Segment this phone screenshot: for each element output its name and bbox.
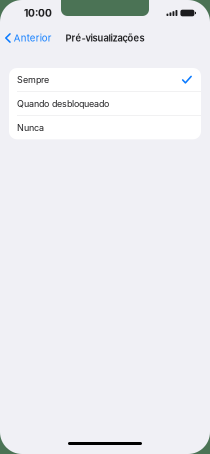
staticText: 10:00 xyxy=(24,7,52,19)
button[interactable]: Anterior xyxy=(0,26,59,50)
staticText: Pré-visualizações xyxy=(65,32,144,44)
button[interactable]: Quando desbloqueado xyxy=(9,92,201,115)
staticText: Nunca xyxy=(17,122,44,133)
button[interactable]: Sempre xyxy=(9,68,201,91)
staticText: Sempre xyxy=(17,74,49,85)
staticText: Anterior xyxy=(14,32,52,44)
button[interactable]: Nunca xyxy=(9,116,201,139)
staticText: Quando desbloqueado xyxy=(17,98,109,109)
